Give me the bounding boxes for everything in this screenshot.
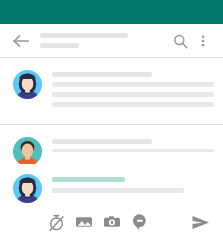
button[interactable]: Timer off — [44, 210, 68, 234]
button[interactable]: Send — [187, 209, 213, 235]
button[interactable]: Attach photo — [72, 210, 96, 234]
button[interactable] — [0, 58, 223, 124]
button[interactable]: More options — [193, 31, 213, 51]
button[interactable]: Search — [169, 30, 191, 52]
button[interactable]: Back — [10, 30, 32, 52]
button[interactable] — [0, 125, 223, 164]
button[interactable] — [52, 177, 211, 193]
button[interactable]: Camera — [100, 210, 124, 234]
button[interactable]: Stickers — [128, 210, 152, 234]
